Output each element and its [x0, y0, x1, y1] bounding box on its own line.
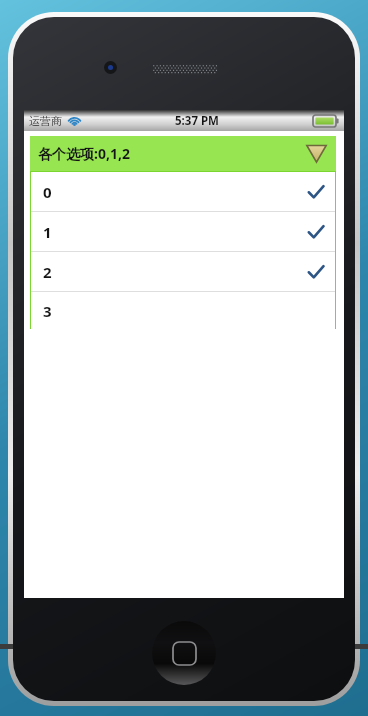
staticText: 0: [43, 182, 52, 202]
staticText: 3: [43, 301, 52, 321]
other: Toggle list: [306, 144, 327, 163]
button[interactable]: 1: [30, 212, 336, 251]
button[interactable]: 3: [30, 292, 336, 329]
button[interactable]: 2: [30, 252, 336, 291]
staticText: 5:37 PM: [175, 113, 219, 129]
staticText: 1: [43, 222, 52, 242]
staticText: 各个选项:0,1,2: [38, 144, 130, 163]
staticText: 运营商: [29, 114, 62, 128]
button[interactable]: 0: [30, 172, 336, 211]
staticText: 2: [43, 262, 52, 282]
button[interactable]: 各个选项:0,1,2: [30, 136, 336, 171]
